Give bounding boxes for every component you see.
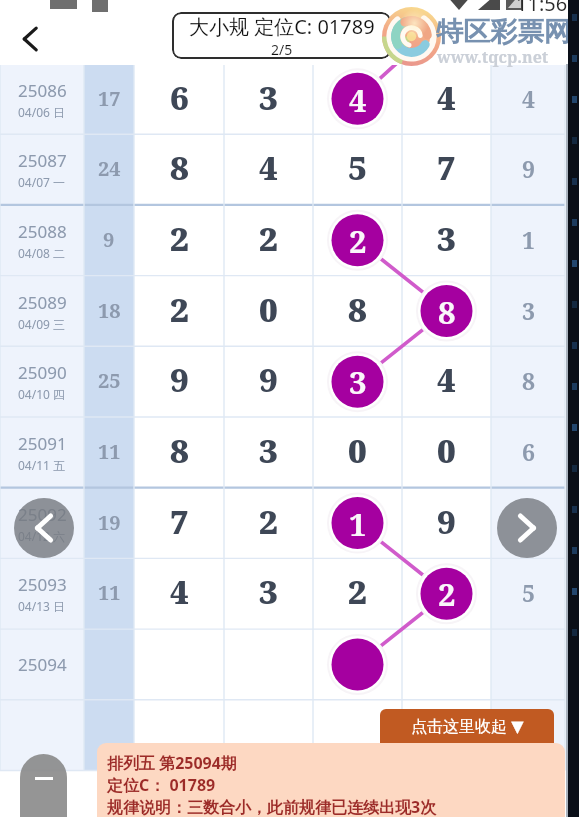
staticText: 17 <box>98 85 121 112</box>
staticText: 2 <box>349 220 367 262</box>
staticText: 2 <box>348 569 367 614</box>
staticText: 04/07 一 <box>18 174 66 190</box>
button[interactable]: Back <box>8 16 54 62</box>
staticText: 9 <box>170 357 189 402</box>
staticText: 8 <box>348 287 367 332</box>
staticText: 8 <box>170 428 189 473</box>
staticText: 1 <box>349 503 367 545</box>
staticText: 1 <box>522 224 535 255</box>
staticText: 7 <box>170 499 189 544</box>
staticText: 9 <box>259 357 278 402</box>
staticText: 25090 <box>18 361 67 384</box>
staticText: 2 <box>438 573 456 615</box>
staticText: 04/08 二 <box>18 245 66 261</box>
staticText: 3 <box>259 75 278 120</box>
staticText: 4 <box>170 569 189 614</box>
staticText: 4 <box>259 145 278 190</box>
staticText: 排列五 第25094期 <box>107 752 237 774</box>
staticText: 25092 <box>18 503 67 526</box>
staticText: 25 <box>98 367 121 394</box>
staticText: 04/06 日 <box>18 104 66 120</box>
staticText: 25089 <box>18 291 67 314</box>
staticText: 24 <box>98 155 121 182</box>
staticText: 0 <box>348 428 367 473</box>
staticText: 11 <box>98 438 121 465</box>
button[interactable]: Previous page <box>14 498 74 558</box>
staticText: 5 <box>348 145 367 190</box>
staticText: 25088 <box>18 220 67 243</box>
staticText: 4 <box>437 75 456 120</box>
staticText: 3 <box>259 569 278 614</box>
staticText: 2 <box>259 499 278 544</box>
staticText: 18 <box>98 297 121 324</box>
staticText: 04/10 四 <box>18 386 66 402</box>
staticText: 04/12 六 <box>18 528 66 544</box>
staticText: 4 <box>522 83 535 114</box>
staticText: 19 <box>98 509 121 536</box>
staticText: 25093 <box>18 573 67 596</box>
staticText: 4 <box>349 79 367 121</box>
staticText: 25094 <box>18 653 67 676</box>
staticText: 04/11 五 <box>18 457 66 473</box>
staticText: 3 <box>259 428 278 473</box>
staticText: 6 <box>522 436 535 467</box>
staticText: 2 <box>170 216 189 261</box>
staticText: 3 <box>522 295 535 326</box>
staticText: 8 <box>438 291 456 333</box>
staticText: 25087 <box>18 149 67 172</box>
staticText: 8 <box>170 145 189 190</box>
staticText: 2/5 <box>271 40 293 59</box>
staticText: 点击这里收起 ▼ <box>411 715 524 737</box>
staticText: 4 <box>437 357 456 402</box>
button[interactable]: 点击这里收起 ▼ <box>380 709 554 743</box>
staticText: 9 <box>103 226 115 253</box>
staticText: 0 <box>437 428 456 473</box>
staticText: 6 <box>170 75 189 120</box>
staticText: 04/09 三 <box>18 316 66 332</box>
staticText: 04/13 日 <box>18 598 66 614</box>
staticText: 2 <box>259 216 278 261</box>
staticText: 25091 <box>18 432 67 455</box>
staticText: 7 <box>437 145 456 190</box>
staticText: 特区彩票网 <box>436 15 571 49</box>
staticText: 2 <box>170 287 189 332</box>
staticText: 3 <box>437 216 456 261</box>
staticText: 8 <box>522 365 535 396</box>
button[interactable]: Next page <box>497 498 557 558</box>
staticText: 5 <box>522 577 535 608</box>
staticText: 0 <box>259 287 278 332</box>
staticText: 定位C： 01789 <box>107 774 216 796</box>
staticText: 9 <box>437 499 456 544</box>
staticText: 规律说明：三数合小，此前规律已连续出现3次 <box>107 796 437 817</box>
button[interactable]: Collapse panel <box>20 754 67 817</box>
staticText: 11 <box>98 579 121 606</box>
staticText: www.tqcp.net <box>437 46 549 68</box>
staticText: 大小规 定位C: 01789 <box>189 13 375 40</box>
staticText: 9 <box>522 153 535 184</box>
staticText: 3 <box>349 361 367 403</box>
button[interactable]: 大小规 定位C: 01789 <box>172 12 391 59</box>
staticText: 11:56 <box>516 0 568 17</box>
staticText: 25086 <box>18 79 67 102</box>
